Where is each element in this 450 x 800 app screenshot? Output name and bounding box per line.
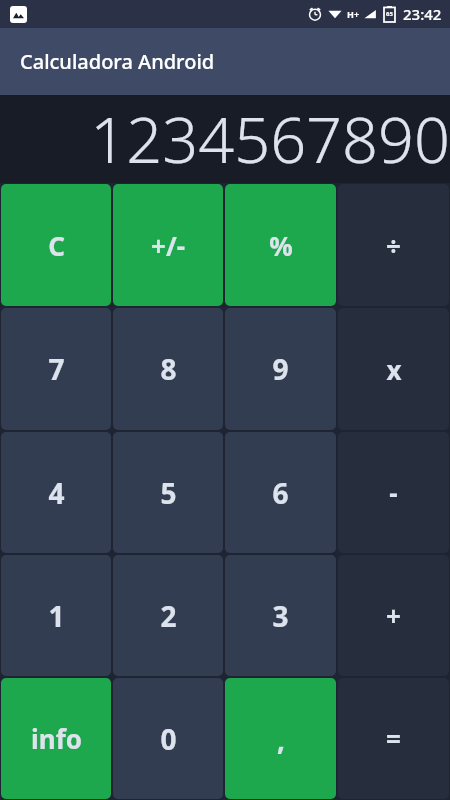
staticText: 6 <box>272 474 289 512</box>
button[interactable]: ÷ <box>338 184 449 306</box>
staticText: 65 <box>386 10 393 18</box>
button[interactable]: 8 <box>113 308 223 430</box>
staticText: info <box>31 721 82 756</box>
staticText: 1 <box>48 597 65 635</box>
staticText: 1234567890 <box>0 96 450 182</box>
staticText: % <box>269 228 293 263</box>
staticText: 5 <box>160 474 177 512</box>
button[interactable]: 7 <box>1 308 111 430</box>
staticText: 3 <box>272 597 289 635</box>
staticText: 8 <box>160 350 177 388</box>
button[interactable]: % <box>225 184 336 306</box>
staticText: + <box>386 598 401 633</box>
button[interactable]: = <box>338 678 449 799</box>
staticText: H+ <box>347 8 360 20</box>
staticText: , <box>277 720 285 758</box>
staticText: 0 <box>160 720 177 758</box>
button[interactable]: - <box>338 432 449 553</box>
button[interactable]: C <box>1 184 111 306</box>
button[interactable]: 2 <box>113 555 223 676</box>
button[interactable]: , <box>225 678 336 799</box>
staticText: 9 <box>272 350 289 388</box>
staticText: = <box>386 721 401 756</box>
button[interactable]: +/- <box>113 184 223 306</box>
button[interactable]: 6 <box>225 432 336 553</box>
button[interactable]: 4 <box>1 432 111 553</box>
staticText: C <box>48 228 65 263</box>
button[interactable]: 9 <box>225 308 336 430</box>
staticText: +/- <box>151 228 185 263</box>
staticText: Calculadora Android <box>20 48 215 75</box>
staticText: 4 <box>48 474 65 512</box>
staticText: x <box>386 352 402 387</box>
button[interactable]: 3 <box>225 555 336 676</box>
button[interactable]: + <box>338 555 449 676</box>
button[interactable]: 1 <box>1 555 111 676</box>
button[interactable]: 5 <box>113 432 223 553</box>
button[interactable]: 0 <box>113 678 223 799</box>
staticText: 2 <box>160 597 177 635</box>
button[interactable]: x <box>338 308 449 430</box>
button[interactable]: info <box>1 678 111 799</box>
staticText: ÷ <box>386 228 401 263</box>
staticText: 23:42 <box>403 4 442 24</box>
staticText: 7 <box>48 350 65 388</box>
staticText: - <box>389 475 398 510</box>
